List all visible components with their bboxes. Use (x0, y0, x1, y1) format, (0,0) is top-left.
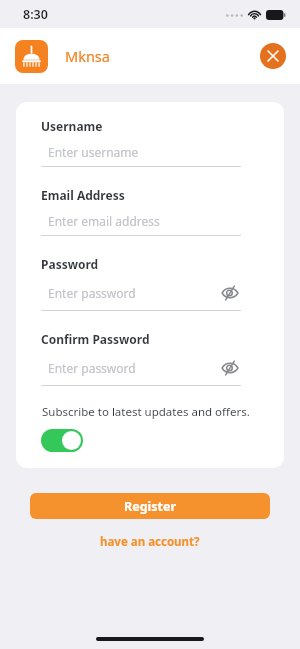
button[interactable]: have an account? (92, 531, 208, 553)
button[interactable]: Close (260, 43, 286, 69)
button[interactable]: Toggle password visibility (219, 282, 241, 304)
staticText: Confirm Password (41, 331, 150, 347)
staticText: Subscribe to latest updates and offers. (42, 404, 250, 420)
button[interactable]: Enter password (41, 357, 241, 379)
staticText: Enter username (48, 144, 139, 160)
staticText: have an account? (100, 534, 200, 550)
button[interactable]: Enter email address (41, 213, 241, 229)
staticText: Enter email address (48, 213, 160, 229)
button[interactable]: Enter username (41, 144, 241, 160)
staticText: Enter password (48, 360, 136, 376)
staticText: 8:30 (23, 6, 48, 23)
button[interactable]: Toggle password visibility (219, 357, 241, 379)
button[interactable]: Mknsa logo (15, 40, 48, 73)
staticText: Email Address (41, 187, 125, 203)
staticText: Username (41, 118, 103, 134)
staticText: Enter password (48, 285, 136, 301)
button[interactable]: Register (30, 493, 270, 519)
staticText: Mknsa (65, 46, 110, 66)
button[interactable]: Enter password (41, 282, 241, 304)
staticText: Password (41, 256, 99, 272)
staticText: Register (124, 498, 177, 515)
button[interactable]: Subscribe to latest updates toggle (41, 429, 83, 452)
